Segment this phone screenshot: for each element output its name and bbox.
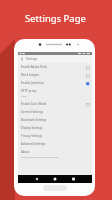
staticText: Settings Page xyxy=(25,12,86,25)
staticText: Version details, license, terms of use xyxy=(21,156,59,159)
staticText: HTTP proxy xyxy=(21,89,37,93)
staticText: Display Settings xyxy=(21,126,43,130)
staticText: Block Images xyxy=(21,73,39,77)
button[interactable]: Enable Color Mode xyxy=(18,100,92,108)
button[interactable]: Block Images xyxy=(18,71,92,79)
button[interactable]: Display Settings xyxy=(18,124,92,132)
button[interactable]: General Settings xyxy=(18,108,92,116)
staticText: General Settings xyxy=(21,110,44,114)
staticText: Enable Adobe Flash xyxy=(21,65,48,69)
staticText: Enable Color Mode xyxy=(21,102,47,106)
staticText: About xyxy=(21,150,30,154)
staticText: Enable JavaScript xyxy=(21,81,44,85)
button[interactable]: Privacy Settings xyxy=(18,132,92,140)
staticText: Settings xyxy=(26,57,37,61)
staticText: Privacy Settings xyxy=(21,134,43,138)
button[interactable]: Bookmark Settings xyxy=(18,116,92,124)
button[interactable]: HTTP proxy xyxy=(18,87,92,100)
button[interactable]: Enable JavaScript xyxy=(18,79,92,87)
staticText: None xyxy=(21,95,27,98)
staticText: Bookmark Settings xyxy=(21,118,47,122)
staticText: Advanced Settings xyxy=(21,142,46,146)
button[interactable]: Enable Adobe Flash xyxy=(18,63,92,71)
button[interactable]: Back xyxy=(18,55,26,63)
button[interactable]: Advanced Settings xyxy=(18,140,92,148)
button[interactable]: About xyxy=(18,148,92,161)
